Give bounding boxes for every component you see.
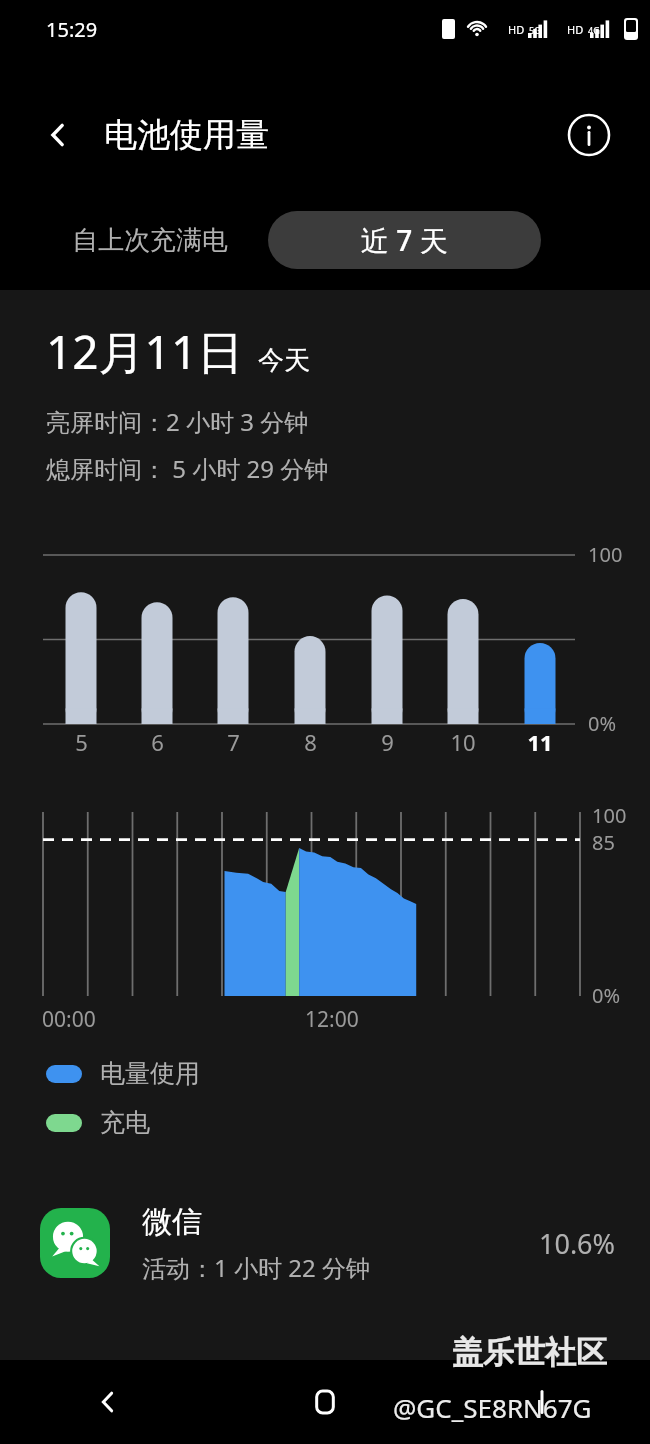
button[interactable]: 近 7 天 [268, 211, 541, 269]
staticText: 近 7 天 [361, 221, 448, 259]
button[interactable]: Back [0, 1360, 216, 1444]
staticText: 12月11日 [46, 320, 244, 383]
staticText: 100 [592, 802, 627, 829]
staticText: 85 [592, 829, 615, 856]
staticText: 亮屏时间：2 小时 3 分钟 [46, 405, 309, 438]
staticText: @GC_SE8RN67G [393, 1390, 592, 1425]
staticText: 电池使用量 [104, 114, 269, 156]
staticText: 4G [588, 24, 600, 36]
staticText: 充电 [100, 1107, 150, 1138]
staticText: HD [508, 22, 525, 37]
staticText: HD [567, 22, 584, 37]
staticText: 9 [381, 727, 394, 757]
staticText: 10 [450, 727, 476, 757]
staticText: 6 [151, 727, 164, 757]
staticText: 活动：1 小时 22 分钟 [142, 1251, 370, 1284]
staticText: 12:00 [305, 1005, 359, 1034]
staticText: 00:00 [42, 1005, 96, 1034]
button[interactable]: Home [216, 1360, 433, 1444]
staticText: 盖乐世社区 [452, 1333, 607, 1372]
staticText: 微信 [142, 1203, 202, 1241]
staticText: 5G [529, 24, 541, 36]
staticText: 7 [227, 727, 240, 757]
staticText: 电量使用 [100, 1058, 200, 1089]
staticText: 0% [588, 710, 617, 737]
staticText: 自上次充满电 [72, 224, 228, 257]
button[interactable]: Information [562, 108, 616, 162]
staticText: 0% [592, 982, 621, 1009]
staticText: 10.6% [539, 1225, 616, 1262]
staticText: 熄屏时间： 5 小时 29 分钟 [46, 452, 329, 485]
button[interactable]: 自上次充满电 [46, 211, 254, 269]
staticText: 11 [527, 727, 553, 757]
button[interactable]: Recent apps [433, 1360, 650, 1444]
staticText: 今天 [258, 344, 310, 377]
staticText: 8 [304, 727, 317, 757]
button[interactable]: Back [30, 107, 86, 163]
button[interactable]: 微信 [0, 1188, 650, 1298]
staticText: 5 [75, 727, 88, 757]
staticText: 100 [588, 541, 623, 568]
staticText: 15:29 [46, 16, 98, 43]
